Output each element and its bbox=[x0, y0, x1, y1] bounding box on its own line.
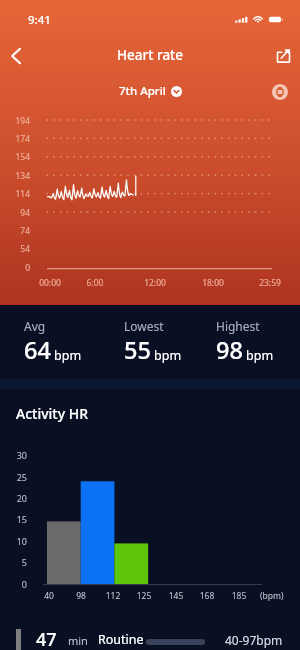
staticText: 0 bbox=[3, 578, 27, 590]
staticText: 6:00 bbox=[73, 277, 117, 289]
button[interactable]: Back bbox=[0, 40, 32, 72]
staticText: Activity HR bbox=[16, 404, 89, 423]
staticText: 55 bbox=[124, 334, 151, 366]
staticText: Avg bbox=[24, 318, 46, 334]
staticText: 7th April bbox=[119, 83, 166, 99]
staticText: min bbox=[68, 633, 88, 648]
staticText: 145 bbox=[159, 590, 193, 602]
staticText: 40 bbox=[32, 590, 66, 602]
staticText: Heart rate bbox=[117, 46, 184, 64]
staticText: 47 bbox=[36, 627, 57, 650]
staticText: 10 bbox=[3, 535, 27, 547]
staticText: 114 bbox=[4, 188, 30, 200]
staticText: 174 bbox=[4, 133, 30, 145]
staticText: Lowest bbox=[124, 318, 164, 334]
staticText: 64 bbox=[24, 334, 51, 366]
staticText: 9:41 bbox=[28, 12, 51, 28]
staticText: 5 bbox=[3, 556, 27, 568]
staticText: (bpm) bbox=[260, 590, 284, 602]
staticText: 54 bbox=[4, 243, 30, 255]
staticText: Highest bbox=[216, 318, 260, 334]
staticText: 20 bbox=[3, 492, 27, 504]
staticText: 00:00 bbox=[28, 277, 72, 289]
staticText: 30 bbox=[3, 449, 27, 461]
staticText: 74 bbox=[4, 225, 30, 237]
staticText: 154 bbox=[4, 151, 30, 163]
staticText: 18:00 bbox=[191, 277, 235, 289]
button[interactable]: Watch device bbox=[272, 84, 288, 100]
staticText: 12:00 bbox=[133, 277, 177, 289]
button[interactable]: 7th April bbox=[119, 83, 182, 99]
staticText: 94 bbox=[4, 207, 30, 219]
staticText: 15 bbox=[3, 513, 27, 525]
staticText: bpm bbox=[246, 347, 274, 364]
staticText: 0 bbox=[4, 262, 30, 274]
button[interactable]: Share bbox=[267, 39, 299, 71]
staticText: 98 bbox=[64, 590, 98, 602]
staticText: 134 bbox=[4, 170, 30, 182]
staticText: Routine bbox=[98, 631, 144, 648]
button[interactable]: 47 bbox=[0, 618, 300, 650]
staticText: 25 bbox=[3, 471, 27, 483]
staticText: 23:59 bbox=[248, 277, 292, 289]
staticText: 125 bbox=[127, 590, 161, 602]
staticText: 185 bbox=[222, 590, 256, 602]
staticText: bpm bbox=[54, 347, 82, 364]
staticText: 98 bbox=[216, 334, 243, 366]
staticText: 112 bbox=[96, 590, 130, 602]
staticText: 194 bbox=[4, 115, 30, 127]
staticText: 40-97bpm bbox=[225, 632, 283, 648]
staticText: bpm bbox=[154, 347, 182, 364]
staticText: 168 bbox=[190, 590, 224, 602]
